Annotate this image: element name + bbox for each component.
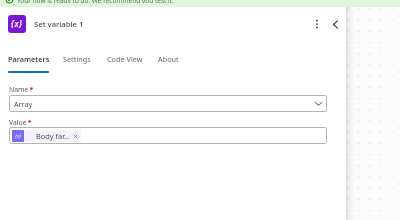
button[interactable]: Collapse panel [326, 15, 344, 33]
staticText: Value [9, 118, 27, 127]
staticText: Set variable 1 [34, 19, 84, 29]
button[interactable]: Remove token [72, 133, 79, 140]
button[interactable]: Array [9, 95, 327, 112]
staticText: Settings [63, 54, 91, 64]
button[interactable]: Code View [98, 48, 152, 74]
button[interactable]: Parameters [2, 48, 55, 74]
staticText: Your flow is ready to go. We recommend y… [17, 0, 174, 3]
staticText: Body far... [36, 131, 71, 141]
button[interactable]: {x} [9, 127, 327, 144]
staticText: About [158, 54, 179, 64]
button[interactable]: More commands [308, 15, 326, 33]
staticText: Array [14, 99, 33, 109]
button[interactable]: About [152, 48, 184, 74]
button[interactable]: Settings [55, 48, 98, 74]
staticText: Parameters [8, 54, 50, 64]
staticText: {x} [11, 18, 23, 30]
staticText: {x} [15, 133, 21, 140]
staticText: Name [9, 85, 29, 94]
staticText: Code View [107, 54, 143, 64]
